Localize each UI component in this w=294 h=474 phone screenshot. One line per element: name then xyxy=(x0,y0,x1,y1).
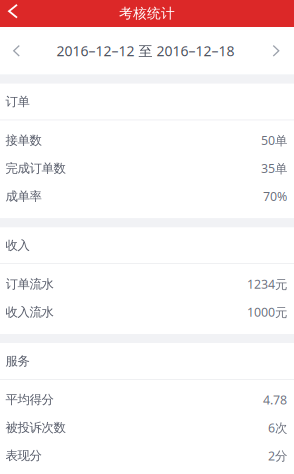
staticText: 收入 xyxy=(5,237,29,253)
staticText: 成单率 xyxy=(5,188,41,204)
button[interactable]: Next week xyxy=(258,27,294,75)
staticText: 接单数 xyxy=(5,132,41,148)
staticText: 订单流水 xyxy=(5,276,53,292)
staticText: 4.78 xyxy=(263,391,287,408)
staticText: 考核统计 xyxy=(119,5,175,22)
staticText: 70% xyxy=(263,188,287,205)
staticText: 1000元 xyxy=(247,304,287,320)
staticText: 2016–12–12 至 2016–12–18 xyxy=(56,41,234,60)
staticText: 1234元 xyxy=(247,276,287,292)
button[interactable]: Previous week xyxy=(0,27,33,75)
staticText: 完成订单数 xyxy=(5,160,65,176)
staticText: 35单 xyxy=(261,160,287,177)
staticText: 订单 xyxy=(5,94,29,109)
staticText: 50单 xyxy=(261,132,287,149)
staticText: 收入流水 xyxy=(5,304,53,320)
staticText: 6次 xyxy=(268,419,287,436)
staticText: 被投诉次数 xyxy=(5,420,65,435)
staticText: 平均得分 xyxy=(5,392,53,407)
button[interactable]: Back xyxy=(0,0,24,27)
staticText: 表现分 xyxy=(5,448,41,463)
staticText: 服务 xyxy=(5,353,29,369)
staticText: 2分 xyxy=(268,447,287,464)
